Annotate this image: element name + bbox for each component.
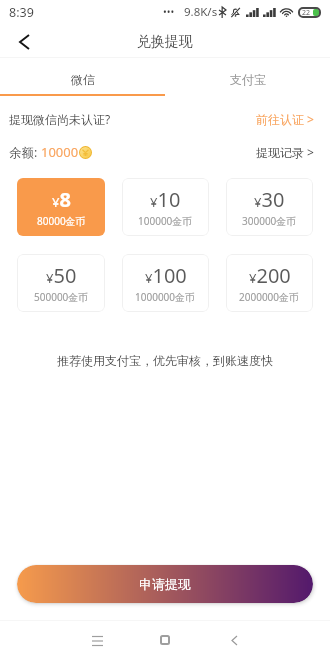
button[interactable]: Recents: [77, 620, 117, 660]
staticText: 兑换提现: [137, 33, 193, 51]
staticText: ¥8: [52, 186, 71, 213]
button[interactable]: ¥50: [17, 254, 105, 312]
staticText: 余额:: [9, 144, 38, 161]
button[interactable]: 支付宝: [165, 58, 330, 94]
button[interactable]: ¥8: [17, 178, 105, 236]
button[interactable]: Home: [145, 620, 185, 660]
staticText: 申请提现: [139, 576, 191, 592]
staticText: 推荐使用支付宝，优先审核，到账速度快: [0, 353, 330, 368]
staticText: 提现微信尚未认证?: [9, 111, 111, 127]
staticText: ¥30: [254, 186, 285, 213]
staticText: ¥50: [46, 262, 77, 289]
staticText: 微信: [71, 72, 95, 87]
button[interactable]: ¥30: [226, 178, 313, 236]
staticText: 10000: [41, 143, 79, 161]
staticText: •••: [163, 5, 175, 19]
staticText: ¥200: [249, 262, 291, 289]
button[interactable]: Back: [214, 620, 254, 660]
staticText: 2000000金币: [239, 290, 300, 304]
staticText: 1000000金币: [135, 290, 196, 304]
staticText: 500000金币: [34, 290, 89, 304]
button[interactable]: 提现记录 >: [250, 144, 330, 160]
staticText: 300000金币: [242, 214, 297, 228]
button[interactable]: 微信: [0, 58, 165, 94]
staticText: ¥100: [145, 262, 187, 289]
staticText: 支付宝: [230, 72, 266, 87]
staticText: 9.8K/s: [184, 4, 218, 20]
staticText: 22: [302, 8, 311, 18]
staticText: 80000金币: [37, 214, 86, 228]
staticText: 提现记录 >: [256, 144, 314, 160]
button[interactable]: 申请提现: [17, 565, 313, 603]
button[interactable]: ¥200: [226, 254, 313, 312]
staticText: 前往认证 >: [256, 111, 314, 127]
staticText: ¥10: [150, 186, 181, 213]
button[interactable]: ¥100: [122, 254, 209, 312]
staticText: 100000金币: [138, 214, 193, 228]
button[interactable]: ¥10: [122, 178, 209, 236]
staticText: 8:39: [9, 4, 34, 21]
button[interactable]: Back: [0, 26, 44, 58]
button[interactable]: 前往认证 >: [250, 111, 330, 127]
